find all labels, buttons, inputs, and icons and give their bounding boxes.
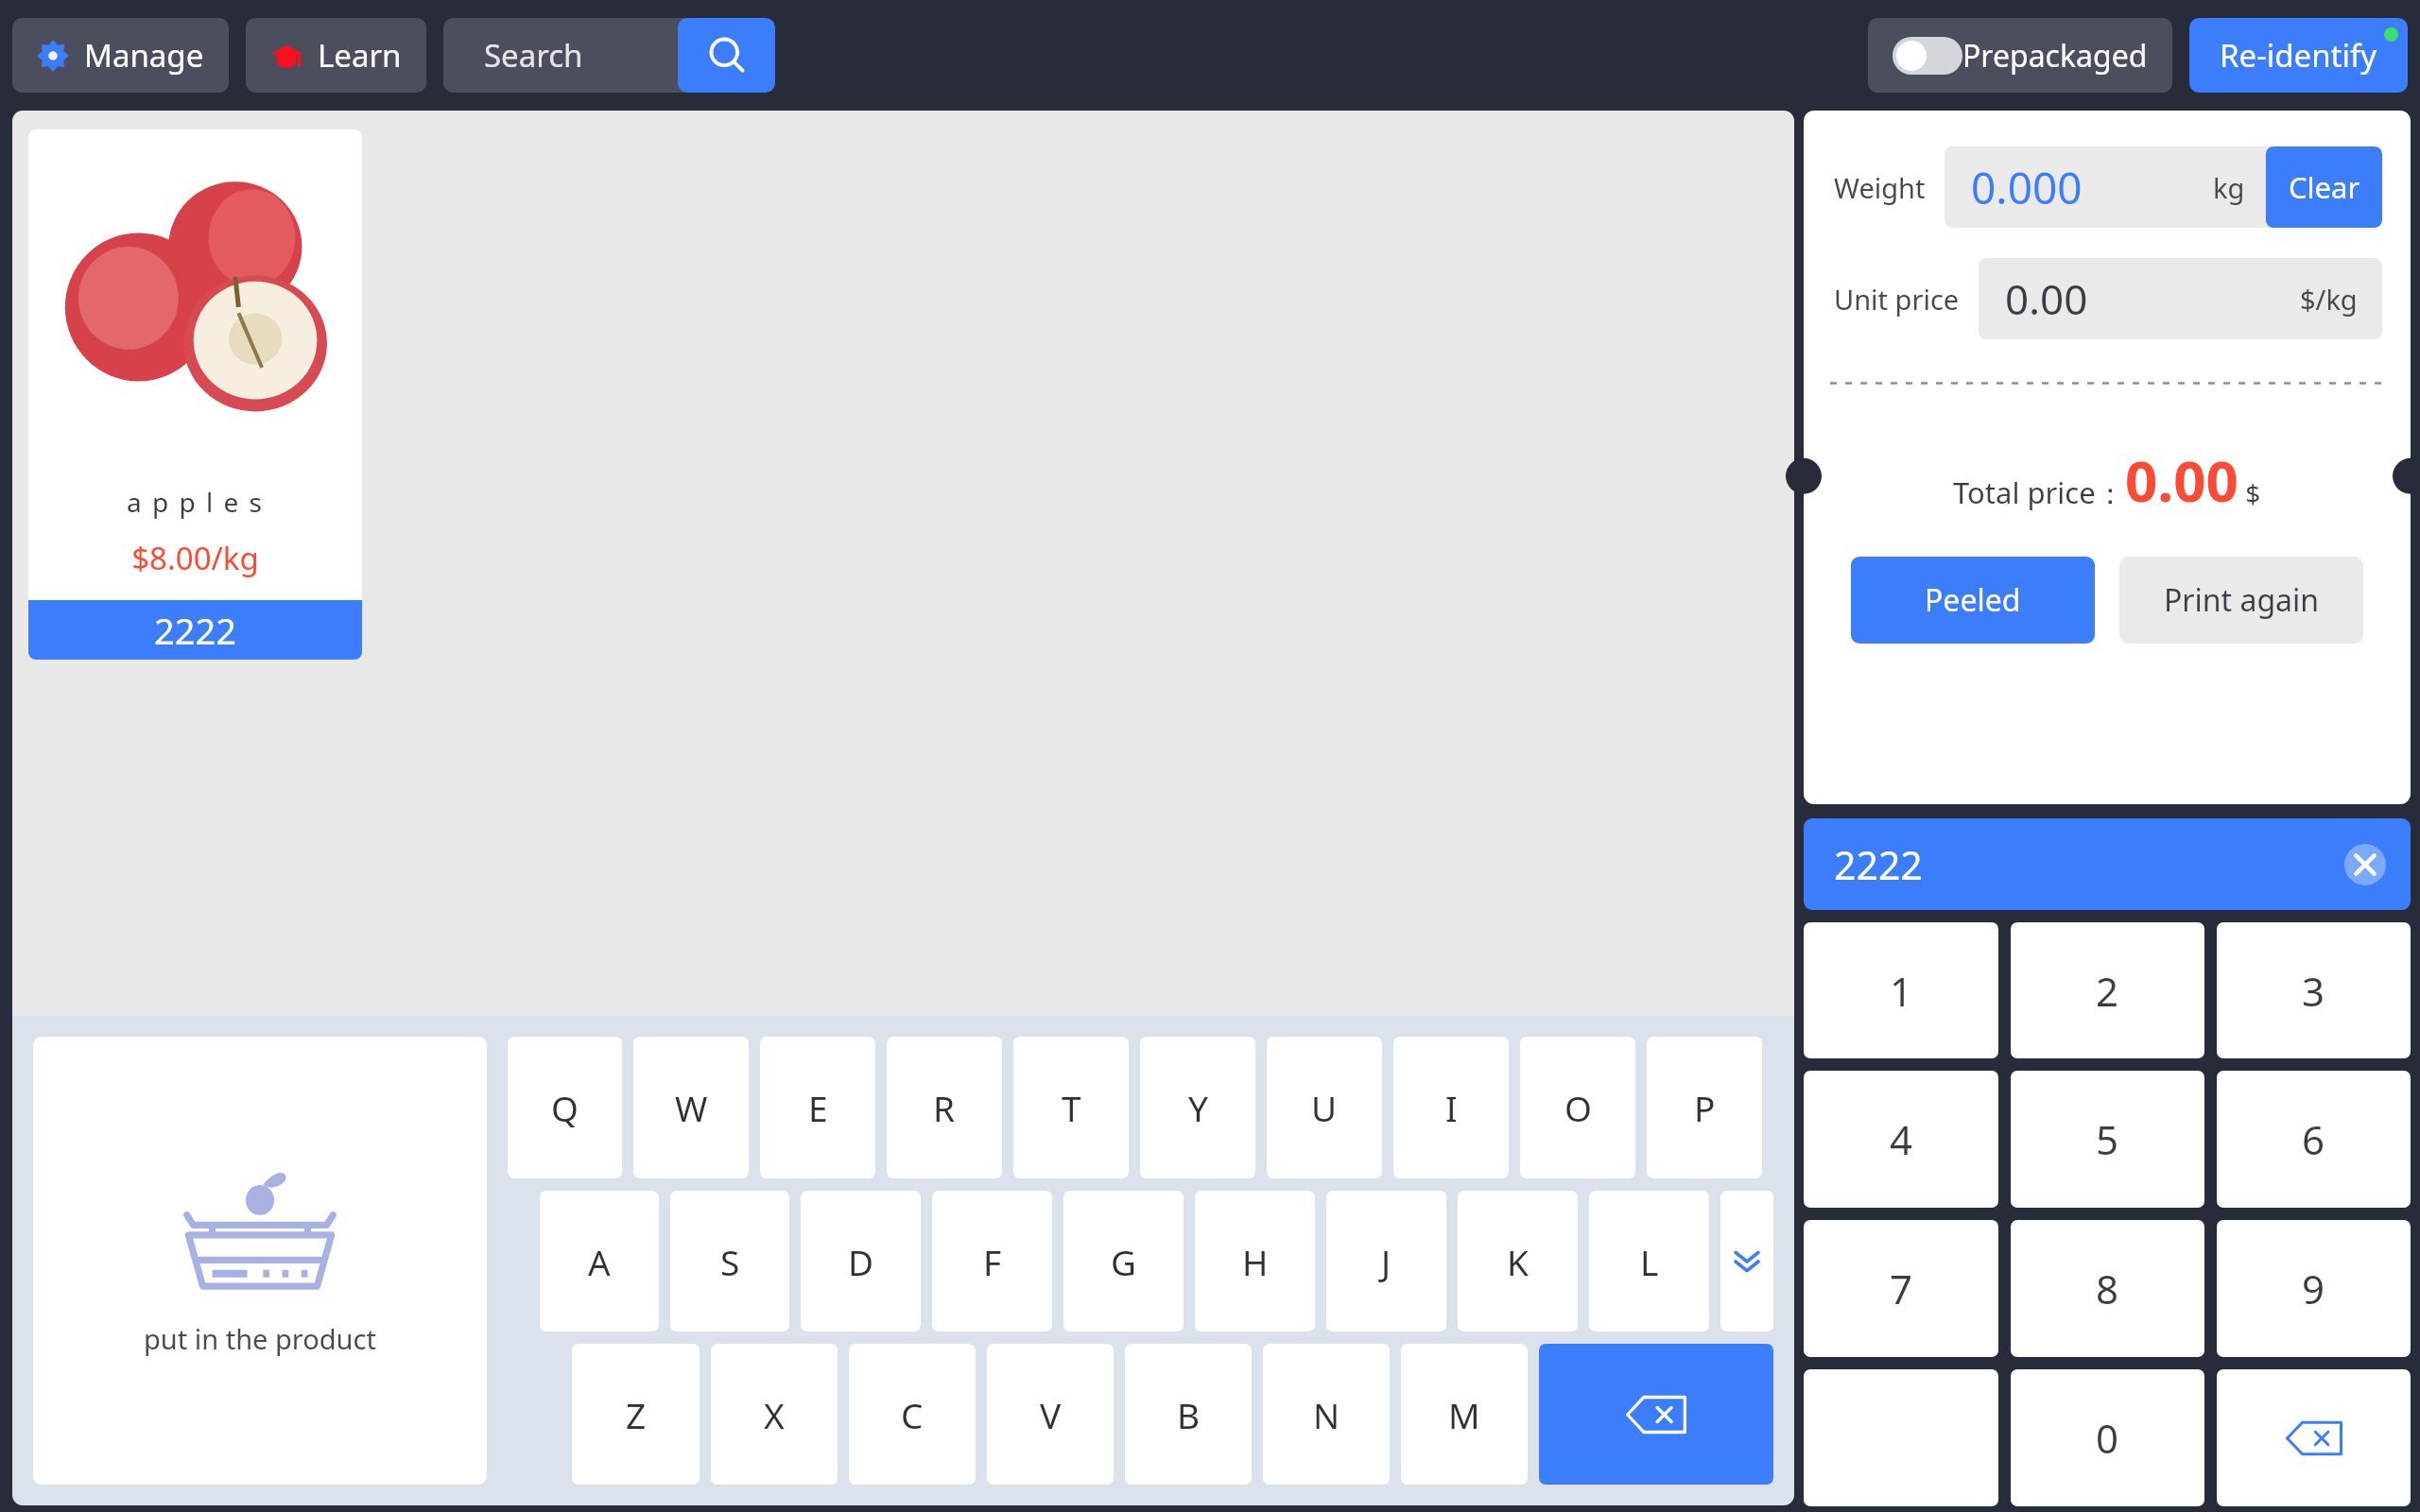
- staticText: E: [808, 1084, 828, 1131]
- button[interactable]: Clear input: [2344, 844, 2386, 885]
- staticText: 0: [2096, 1411, 2119, 1465]
- staticText: R: [933, 1084, 956, 1131]
- staticText: 9: [2302, 1262, 2325, 1315]
- staticText: O: [1564, 1084, 1592, 1131]
- button[interactable]: 5: [2011, 1071, 2204, 1208]
- staticText: Z: [626, 1391, 647, 1438]
- button[interactable]: Z: [572, 1344, 700, 1485]
- button[interactable]: Search: [678, 18, 775, 93]
- button[interactable]: Clear: [2266, 146, 2382, 228]
- staticText: 2222: [154, 606, 236, 655]
- button[interactable]: I: [1393, 1037, 1509, 1178]
- button[interactable]: J: [1326, 1191, 1446, 1332]
- staticText: Learn: [318, 34, 402, 77]
- button[interactable]: T: [1013, 1037, 1129, 1178]
- button[interactable]: 2222: [1804, 818, 2411, 910]
- staticText: 3: [2302, 964, 2325, 1018]
- button[interactable]: Backspace: [2217, 1369, 2411, 1506]
- staticText: A: [588, 1238, 611, 1285]
- button[interactable]: C: [849, 1344, 976, 1485]
- button[interactable]: Q: [508, 1037, 622, 1178]
- staticText: N: [1313, 1391, 1340, 1438]
- button[interactable]: 8: [2011, 1220, 2204, 1357]
- staticText: T: [1062, 1084, 1081, 1131]
- button[interactable]: a p p l e s: [28, 129, 362, 660]
- button[interactable]: 0: [2011, 1369, 2204, 1506]
- staticText: 8: [2096, 1262, 2119, 1315]
- button[interactable]: K: [1458, 1191, 1578, 1332]
- staticText: U: [1311, 1084, 1338, 1131]
- staticText: 0.00: [2125, 441, 2238, 519]
- staticText: G: [1111, 1238, 1136, 1285]
- button[interactable]: X: [711, 1344, 838, 1485]
- button[interactable]: B: [1125, 1344, 1252, 1485]
- button[interactable]: 7: [1804, 1220, 1998, 1357]
- button[interactable]: 0.00: [1979, 258, 2382, 339]
- staticText: B: [1177, 1391, 1201, 1438]
- button[interactable]: 9: [2217, 1220, 2411, 1357]
- staticText: 5: [2096, 1112, 2119, 1166]
- button[interactable]: F: [932, 1191, 1052, 1332]
- staticText: kg: [2213, 169, 2245, 206]
- button[interactable]: Search: [443, 18, 775, 93]
- staticText: S: [720, 1238, 740, 1285]
- button[interactable]: H: [1195, 1191, 1315, 1332]
- staticText: W: [675, 1084, 708, 1131]
- staticText: 2222: [1834, 838, 1923, 891]
- button[interactable]: put in the product: [33, 1037, 487, 1485]
- staticText: K: [1507, 1238, 1529, 1285]
- button[interactable]: R: [887, 1037, 1002, 1178]
- staticText: L: [1640, 1238, 1659, 1285]
- staticText: Weight: [1834, 169, 1926, 206]
- staticText: Y: [1188, 1084, 1208, 1131]
- button[interactable]: 3: [2217, 922, 2411, 1058]
- button[interactable]: 4: [1804, 1071, 1998, 1208]
- staticText: Re-identify: [2220, 34, 2377, 77]
- staticText: 2: [2096, 964, 2119, 1018]
- button[interactable]: U: [1267, 1037, 1382, 1178]
- button[interactable]: D: [801, 1191, 921, 1332]
- button[interactable]: 2: [2011, 922, 2204, 1058]
- button[interactable]: G: [1063, 1191, 1184, 1332]
- button[interactable]: E: [760, 1037, 875, 1178]
- button[interactable]: Hide keyboard: [1720, 1191, 1773, 1332]
- button[interactable]: S: [670, 1191, 789, 1332]
- button[interactable]: [1804, 1369, 1998, 1506]
- staticText: P: [1694, 1084, 1716, 1131]
- button[interactable]: Backspace: [1539, 1344, 1773, 1485]
- staticText: D: [848, 1238, 874, 1285]
- button[interactable]: Re-identify: [2189, 18, 2408, 93]
- staticText: Search: [484, 34, 583, 77]
- button[interactable]: A: [540, 1191, 659, 1332]
- button[interactable]: Y: [1140, 1037, 1255, 1178]
- button[interactable]: Manage: [12, 18, 229, 93]
- staticText: 0.000: [1971, 158, 2083, 217]
- button[interactable]: Prepackaged: [1868, 18, 2172, 93]
- button[interactable]: Peeled: [1851, 557, 2095, 644]
- staticText: 7: [1890, 1262, 1913, 1315]
- button[interactable]: O: [1520, 1037, 1635, 1178]
- staticText: M: [1448, 1391, 1480, 1438]
- button[interactable]: Print again: [2119, 557, 2363, 644]
- staticText: 1: [1890, 964, 1913, 1018]
- staticText: I: [1445, 1084, 1458, 1131]
- button[interactable]: P: [1647, 1037, 1762, 1178]
- button[interactable]: 1: [1804, 922, 1998, 1058]
- button[interactable]: N: [1263, 1344, 1390, 1485]
- staticText: Print again: [2164, 579, 2320, 621]
- button[interactable]: W: [633, 1037, 749, 1178]
- staticText: V: [1040, 1391, 1062, 1438]
- staticText: Prepackaged: [1962, 35, 2148, 77]
- staticText: J: [1381, 1238, 1391, 1285]
- button[interactable]: Learn: [246, 18, 426, 93]
- button[interactable]: V: [987, 1344, 1114, 1485]
- button[interactable]: M: [1401, 1344, 1528, 1485]
- staticText: $/kg: [2300, 281, 2358, 318]
- staticText: put in the product: [144, 1320, 376, 1357]
- staticText: $: [2238, 475, 2261, 511]
- button[interactable]: L: [1589, 1191, 1709, 1332]
- staticText: Unit price: [1834, 281, 1960, 318]
- button[interactable]: 6: [2217, 1071, 2411, 1208]
- staticText: Manage: [84, 34, 204, 77]
- staticText: C: [901, 1391, 924, 1438]
